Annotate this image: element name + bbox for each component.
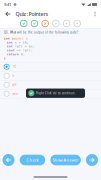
button[interactable]: 10 bbox=[0, 62, 101, 71]
staticText: int bbox=[7, 45, 13, 48]
staticText: Q3. What will be the output of the follo… bbox=[4, 31, 78, 34]
button[interactable]: Error bbox=[0, 89, 101, 98]
staticText: << *ptr; bbox=[15, 49, 33, 52]
button[interactable]: ptr bbox=[0, 80, 101, 89]
staticText: 0; bbox=[19, 53, 25, 56]
button[interactable]: x bbox=[0, 71, 101, 80]
staticText: Error bbox=[12, 92, 18, 95]
button[interactable]: Show Answer bbox=[50, 155, 81, 165]
staticText: x bbox=[12, 74, 13, 77]
staticText: Show Answer bbox=[53, 157, 79, 163]
button[interactable]: Back bbox=[3, 9, 13, 19]
button[interactable]: Previous question bbox=[2, 154, 14, 166]
staticText: int bbox=[7, 41, 13, 44]
staticText: *ptr = &x; bbox=[13, 45, 35, 48]
staticText: } bbox=[4, 57, 6, 60]
staticText: int bbox=[4, 37, 10, 40]
staticText: cout bbox=[7, 49, 15, 52]
button[interactable]: Next question bbox=[86, 154, 98, 166]
staticText: Check bbox=[26, 157, 38, 163]
staticText: ptr bbox=[12, 83, 16, 86]
button[interactable]: More options bbox=[92, 9, 98, 19]
staticText: return bbox=[7, 53, 19, 56]
staticText: 10 bbox=[12, 65, 16, 68]
staticText: Right Click 'vis' to continue. bbox=[36, 91, 76, 95]
staticText: x = 10; bbox=[13, 41, 29, 44]
staticText: Quiz: Pointers bbox=[15, 10, 48, 18]
staticText: main() { bbox=[10, 37, 28, 40]
staticText: 9:41 bbox=[4, 2, 11, 7]
button[interactable]: Check bbox=[20, 155, 45, 165]
